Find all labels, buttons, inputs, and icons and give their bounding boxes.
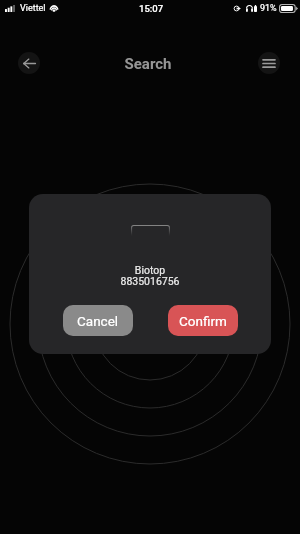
staticText: Biotop <box>29 264 271 276</box>
staticText: 91% <box>260 3 277 14</box>
staticText: 15:07 <box>139 3 164 14</box>
button[interactable]: Menu <box>258 52 280 74</box>
staticText: Confirm <box>179 313 227 329</box>
staticText: Viettel <box>20 3 46 14</box>
button[interactable]: Confirm <box>168 305 238 336</box>
staticText: Search <box>0 55 298 73</box>
staticText: 8835016756 <box>29 275 271 287</box>
button[interactable]: Cancel <box>63 305 133 336</box>
button[interactable]: Back <box>18 52 40 74</box>
staticText: Cancel <box>77 313 119 329</box>
